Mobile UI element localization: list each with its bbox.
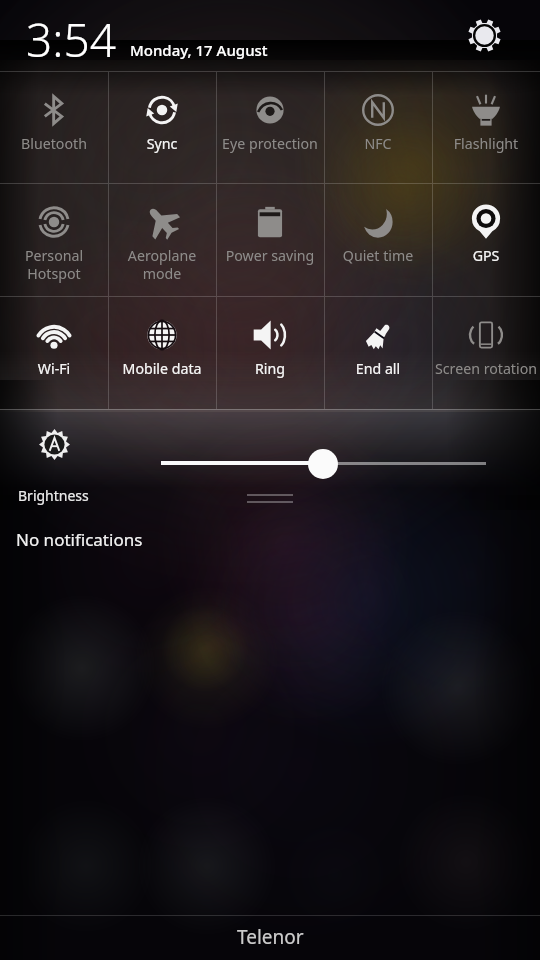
button[interactable]: Personal Hotspot — [0, 184, 108, 296]
button[interactable]: Wi-Fi — [0, 297, 108, 409]
staticText: Quiet time — [324, 246, 432, 265]
button[interactable]: Aeroplane mode — [108, 184, 216, 296]
staticText: Sync — [108, 134, 216, 153]
button[interactable]: NFC — [324, 72, 432, 183]
button[interactable]: Screen rotation — [432, 297, 540, 409]
staticText: Wi-Fi — [0, 359, 108, 378]
staticText: End all — [324, 359, 432, 378]
button[interactable]: Sync — [108, 72, 216, 183]
staticText: Bluetooth — [0, 134, 108, 153]
staticText: Telenor — [237, 924, 304, 950]
button[interactable]: End all — [324, 297, 432, 409]
staticText: Brightness — [18, 486, 89, 505]
staticText: Power saving — [216, 246, 324, 265]
button[interactable]: Flashlight — [432, 72, 540, 183]
staticText: No notifications — [16, 528, 143, 551]
button[interactable]: Mobile data — [108, 297, 216, 409]
staticText: Ring — [216, 359, 324, 378]
staticText: Aeroplane mode — [108, 246, 216, 283]
button[interactable]: Ring — [216, 297, 324, 409]
button[interactable]: Eye protection — [216, 72, 324, 183]
staticText: Monday, 17 August — [130, 40, 268, 60]
button[interactable]: Power saving — [216, 184, 324, 296]
staticText: 3:54 — [26, 8, 117, 71]
staticText: Personal Hotspot — [0, 246, 108, 283]
staticText: GPS — [432, 246, 540, 265]
button[interactable]: Brightness slider — [308, 449, 338, 479]
button[interactable]: Settings — [458, 9, 510, 61]
staticText: Flashlight — [432, 134, 540, 153]
staticText: Mobile data — [108, 359, 216, 378]
button[interactable]: Quiet time — [324, 184, 432, 296]
button[interactable]: Bluetooth — [0, 72, 108, 183]
button[interactable]: GPS — [432, 184, 540, 296]
button[interactable]: Auto brightness — [32, 422, 76, 466]
staticText: Eye protection — [216, 134, 324, 153]
staticText: NFC — [324, 134, 432, 153]
staticText: Screen rotation — [432, 359, 540, 378]
